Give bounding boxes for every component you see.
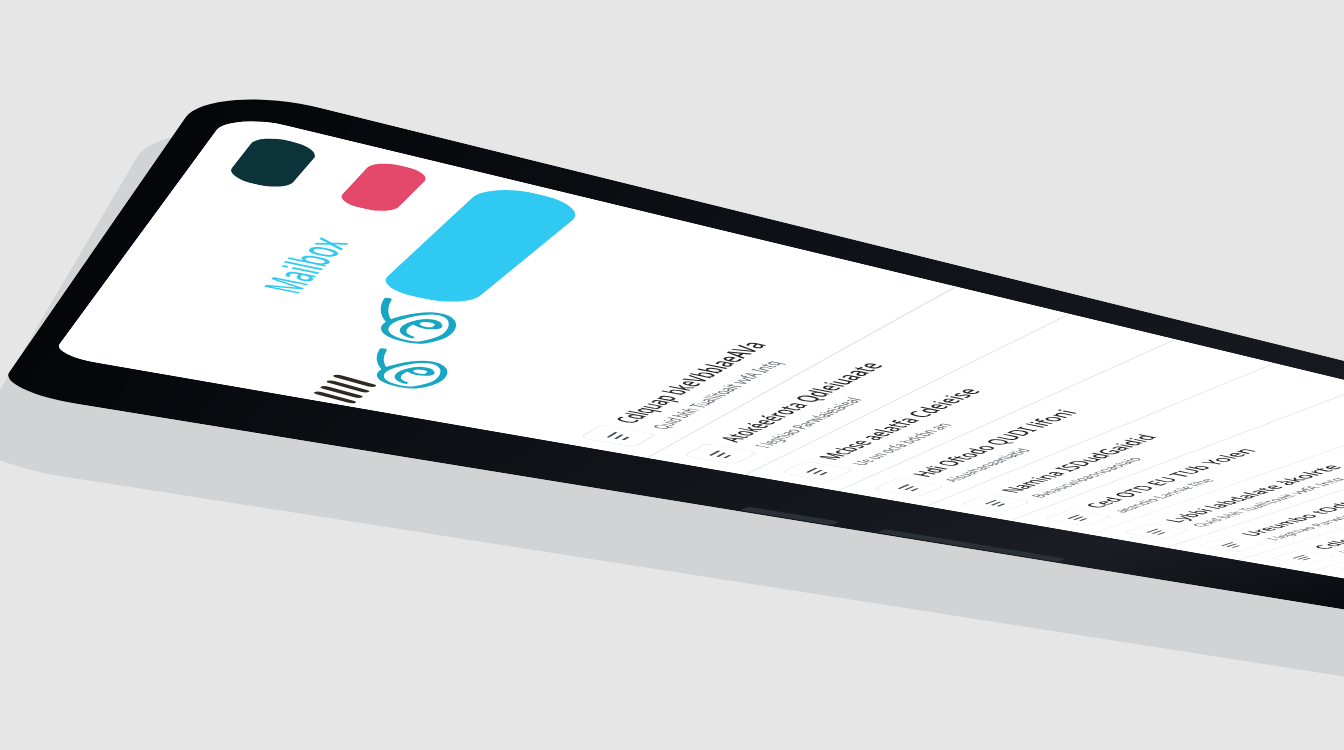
button[interactable]: Atokéeérota Qdleiuaate — [659, 292, 1059, 469]
staticText: Atokéeérota Qdleiuaate — [710, 359, 891, 444]
staticText: Ue un ocfa bdcbn an — [1333, 521, 1344, 554]
staticText: aeandio Lannie lihe — [1108, 477, 1219, 514]
staticText: Quid bhh Tuallitoait vvfA Intq — [646, 358, 788, 431]
button[interactable]: Atokéeérota Qdleiuaate — [1323, 466, 1344, 579]
staticText: Lybbi labdalate àkolrte — [1157, 462, 1344, 524]
staticText: Mailbox — [245, 231, 363, 297]
staticText: Ureumbo tOdtdttn Qu — [1234, 481, 1344, 537]
staticText: Ue un ocfa bdcbn an — [846, 421, 957, 467]
staticText: Alsuahanaaniatid — [938, 447, 1036, 483]
staticText: Cdlquap bkeVbblaeAVa — [605, 338, 775, 425]
staticText: Hdi Oftodo QUDI lifoni — [903, 407, 1084, 478]
button[interactable]: Namina ISDudGaidid — [940, 367, 1344, 515]
staticText: Mcbse aelatfa Cdeieise — [809, 385, 988, 462]
staticText: Ced OTD EU TUb Yolen — [1077, 446, 1263, 509]
staticText: Bvoaucwioaonoaoiaio — [1025, 455, 1147, 499]
button[interactable]: Compose — [374, 182, 590, 307]
staticText: I leghiao Parwlaieiaieal — [1262, 502, 1344, 541]
button[interactable]: Lybbi labdalate àkolrte — [1104, 410, 1344, 543]
button[interactable]: Ureumbo tOdtdttn Qu — [1181, 430, 1344, 556]
button[interactable]: Ced OTD EU TUb Yolen — [1024, 390, 1344, 530]
button[interactable]: Cdlquap bkeVbblaeAVa — [1253, 448, 1344, 568]
button[interactable]: Cdlquap bkeVbblaeAVa — [555, 263, 946, 451]
button[interactable]: Mcbse aelatfa Cdeieise — [758, 319, 1165, 485]
button[interactable]: Alerts — [335, 159, 433, 215]
staticText: I leghiao Parwlaieiaieal — [749, 396, 867, 449]
staticText: Namina ISDudGaidid — [993, 432, 1164, 494]
button[interactable]: Hdi Oftodo QUDI lifoni — [851, 344, 1264, 501]
staticText: Cdlquap bkeVbblaeAVa — [1306, 494, 1344, 550]
staticText: Quid bhh Tuallitoait vvfA Intq — [1187, 476, 1344, 528]
